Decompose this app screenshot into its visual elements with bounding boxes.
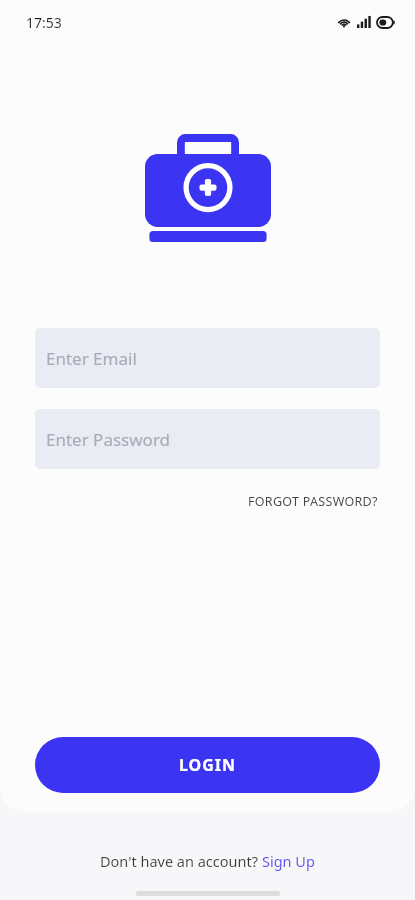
staticText: FORGOT PASSWORD?: [248, 493, 378, 510]
other: Medical kit logo: [145, 138, 271, 242]
staticText: Don't have an account?: [100, 851, 262, 871]
staticText: LOGIN: [179, 754, 237, 776]
button[interactable]: Enter Email: [35, 328, 380, 388]
staticText: Sign Up: [262, 851, 315, 871]
button[interactable]: Sign Up: [262, 851, 315, 871]
button[interactable]: FORGOT PASSWORD?: [246, 489, 380, 514]
staticText: Enter Email: [46, 347, 137, 370]
staticText: 17:53: [26, 13, 62, 32]
button[interactable]: LOGIN: [35, 737, 380, 793]
staticText: Enter Password: [46, 428, 171, 451]
button[interactable]: Enter Password: [35, 409, 380, 469]
